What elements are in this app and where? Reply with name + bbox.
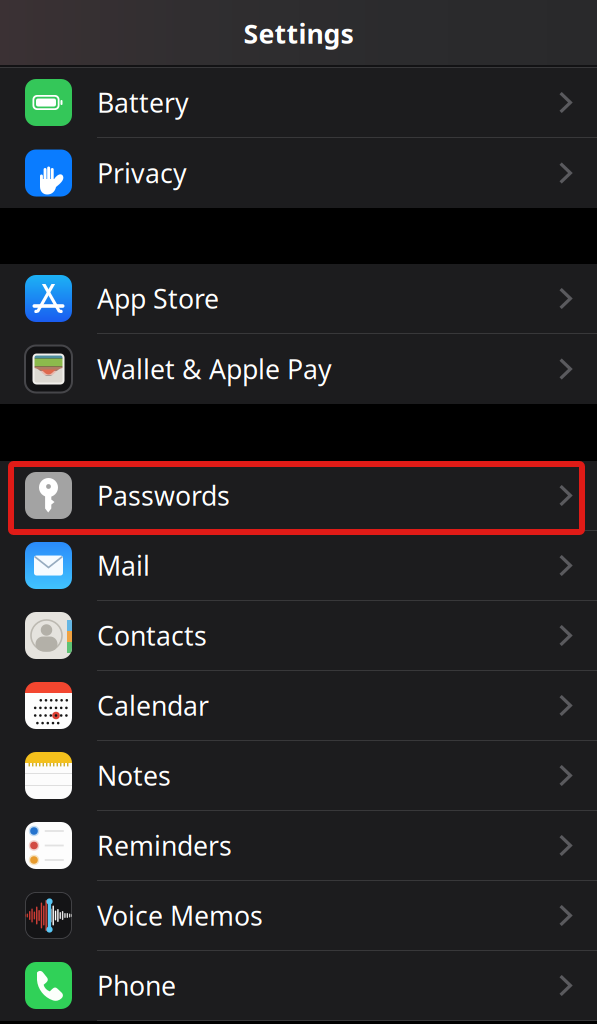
staticText: Passwords (97, 478, 230, 513)
staticText: Settings (243, 16, 353, 51)
button[interactable]: App Store (0, 264, 597, 334)
staticText: Calendar (97, 688, 209, 723)
button[interactable]: Contacts (0, 601, 597, 671)
staticText: Voice Memos (97, 898, 263, 933)
staticText: Notes (97, 758, 171, 793)
button[interactable]: Passwords (0, 461, 597, 531)
staticText: Contacts (97, 618, 207, 653)
button[interactable]: Reminders (0, 811, 597, 881)
staticText: Phone (97, 968, 176, 1003)
staticText: App Store (97, 281, 219, 316)
staticText: Privacy (97, 155, 187, 191)
button[interactable]: Calendar (0, 671, 597, 741)
button[interactable]: Battery (0, 68, 597, 138)
button[interactable]: Notes (0, 741, 597, 811)
staticText: Wallet & Apple Pay (97, 351, 332, 387)
button[interactable]: Wallet & Apple Pay (0, 334, 597, 404)
staticText: Battery (97, 85, 189, 120)
staticText: Reminders (97, 828, 232, 863)
button[interactable]: Phone (0, 951, 597, 1021)
button[interactable]: Privacy (0, 138, 597, 208)
button[interactable]: Voice Memos (0, 881, 597, 951)
staticText: Mail (97, 548, 150, 583)
button[interactable]: Mail (0, 531, 597, 601)
